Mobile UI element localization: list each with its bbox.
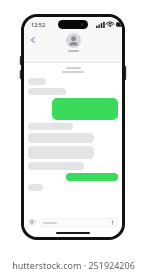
staticText: 12:52 <box>31 21 46 28</box>
button[interactable]: Message <box>28 133 94 143</box>
staticText: hutterstock.com · 251924206 <box>12 259 135 271</box>
button[interactable] <box>66 33 81 52</box>
button[interactable]: Message <box>28 78 46 85</box>
button[interactable]: Add attachment <box>28 218 36 226</box>
button[interactable]: Message <box>66 173 118 181</box>
button[interactable]: Voice message <box>110 220 115 225</box>
button[interactable]: Message <box>28 184 43 191</box>
button[interactable]: Back <box>27 34 39 46</box>
button[interactable]: Voice message <box>39 218 118 227</box>
button[interactable]: Message <box>28 123 73 130</box>
button[interactable]: Message <box>28 88 66 95</box>
button[interactable]: Message <box>28 162 84 170</box>
button[interactable]: Message <box>52 98 118 120</box>
